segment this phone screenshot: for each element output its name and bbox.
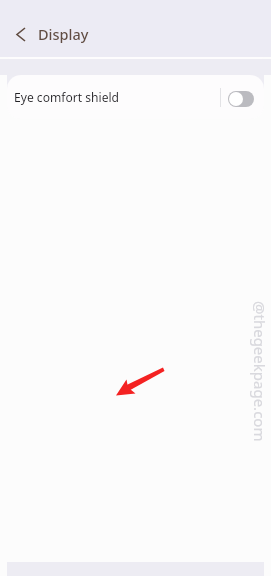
button[interactable]: Back — [9, 22, 33, 46]
staticText: Display — [38, 24, 89, 44]
staticText: @thegeekpage.com — [250, 301, 270, 501]
button[interactable]: Eye comfort shield — [7, 75, 264, 119]
staticText: Eye comfort shield — [14, 89, 220, 105]
